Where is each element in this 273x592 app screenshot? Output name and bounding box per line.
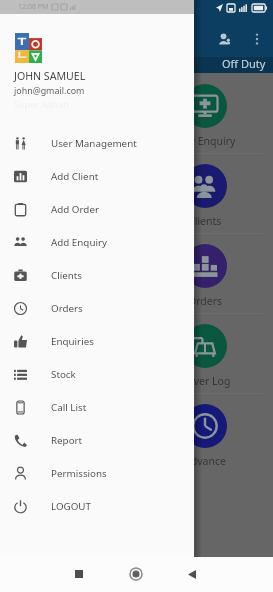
button[interactable]: Account — [211, 26, 237, 52]
staticText: Permissions — [51, 467, 107, 480]
button[interactable]: Users — [0, 153, 136, 233]
button[interactable]: Add Client — [0, 160, 194, 193]
staticText: New Enquiry — [173, 134, 236, 148]
button[interactable]: Stock — [0, 358, 194, 391]
button[interactable]: Recent apps — [59, 561, 99, 587]
staticText: Clients — [188, 214, 222, 228]
button[interactable]: Report — [0, 424, 194, 457]
button[interactable]: Clients — [0, 259, 194, 292]
staticText: Report — [51, 434, 83, 447]
staticText: New Order — [41, 134, 95, 148]
staticText: Attendance — [40, 374, 97, 388]
button[interactable]: Orders — [136, 233, 273, 313]
staticText: Orders — [51, 302, 83, 315]
button[interactable]: Back — [172, 561, 212, 587]
staticText: Add Enquiry — [51, 236, 108, 249]
button[interactable]: More options — [244, 26, 270, 52]
staticText: Clients — [51, 269, 83, 282]
button[interactable]: Home — [116, 561, 156, 587]
staticText: Add Client — [51, 170, 99, 183]
button[interactable]: Reports — [0, 393, 136, 473]
button[interactable]: New Enquiry — [136, 73, 273, 153]
button[interactable]: Call List — [0, 391, 194, 424]
staticText: Off Duty — [222, 56, 266, 71]
staticText: 12:08 PM — [18, 2, 49, 12]
button[interactable]: Enquiries — [0, 325, 194, 358]
button[interactable]: Add Order — [0, 193, 194, 226]
staticText: User Management — [51, 137, 137, 150]
staticText: Call List — [51, 401, 87, 414]
button[interactable]: Orders — [0, 292, 194, 325]
staticText: Driver Log — [179, 374, 231, 388]
staticText: LOGOUT — [51, 500, 91, 513]
staticText: Advance — [184, 454, 226, 468]
staticText: Enquiries — [51, 335, 94, 348]
button[interactable]: Advance — [136, 393, 273, 473]
button[interactable]: Stock — [0, 233, 136, 313]
staticText: john@gmail.com — [14, 84, 85, 96]
button[interactable]: New Order — [0, 73, 136, 153]
staticText: Add Order — [51, 203, 99, 216]
button[interactable]: LOGOUT — [0, 490, 194, 523]
staticText: Stock — [55, 294, 82, 308]
staticText: JOHN SAMUEL — [14, 69, 86, 83]
staticText: Orders — [188, 294, 223, 308]
button[interactable]: Attendance — [0, 313, 136, 393]
button[interactable]: Driver Log — [136, 313, 273, 393]
staticText: Stock — [51, 368, 76, 381]
button[interactable]: Add Enquiry — [0, 226, 194, 259]
button[interactable]: User Management — [0, 127, 194, 160]
button[interactable]: Clients — [136, 153, 273, 233]
button[interactable]: Permissions — [0, 457, 194, 490]
